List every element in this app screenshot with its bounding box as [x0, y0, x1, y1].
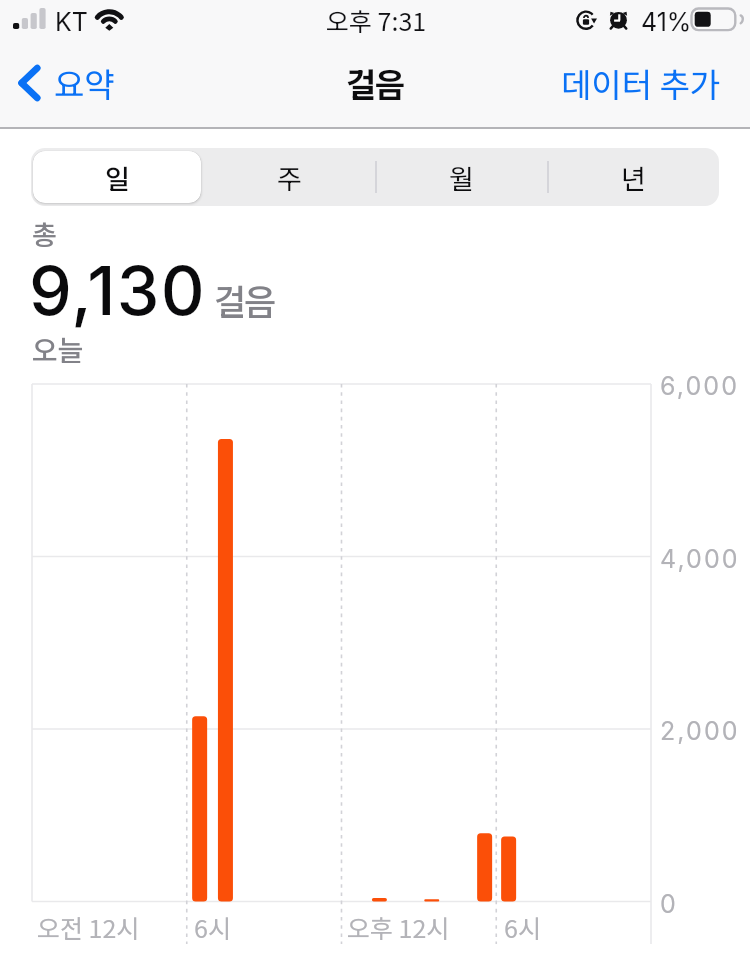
staticText: KT: [55, 7, 88, 37]
staticText: 6시: [194, 909, 231, 945]
staticText: 년: [621, 158, 646, 197]
staticText: 오전 12시: [37, 909, 140, 945]
button[interactable]: 주: [203, 148, 375, 206]
staticText: 0: [660, 889, 678, 919]
button[interactable]: 년: [547, 148, 719, 206]
staticText: 4,000: [660, 544, 740, 574]
staticText: 6시: [504, 909, 541, 945]
staticText: 41%: [641, 7, 692, 37]
staticText: 걸음: [346, 59, 404, 107]
staticText: 오후 12시: [347, 909, 450, 945]
staticText: 월: [449, 158, 474, 197]
staticText: 총: [32, 214, 57, 253]
other: 뒤로: [17, 62, 43, 104]
staticText: 6,000: [660, 371, 740, 401]
staticText: 9,130: [29, 249, 206, 331]
staticText: 주: [277, 158, 302, 197]
staticText: 걸음: [214, 274, 274, 325]
button[interactable]: 데이터 추가: [545, 49, 750, 117]
staticText: 데이터 추가: [561, 59, 721, 107]
staticText: 요약: [54, 59, 115, 107]
button[interactable]: 뒤로: [0, 51, 129, 115]
button[interactable]: 월: [375, 148, 547, 206]
button[interactable]: 일: [31, 148, 203, 206]
staticText: 2,000: [660, 716, 740, 746]
staticText: 일: [105, 158, 130, 197]
staticText: 오늘: [32, 329, 84, 370]
staticText: 오후 7:31: [326, 2, 427, 38]
